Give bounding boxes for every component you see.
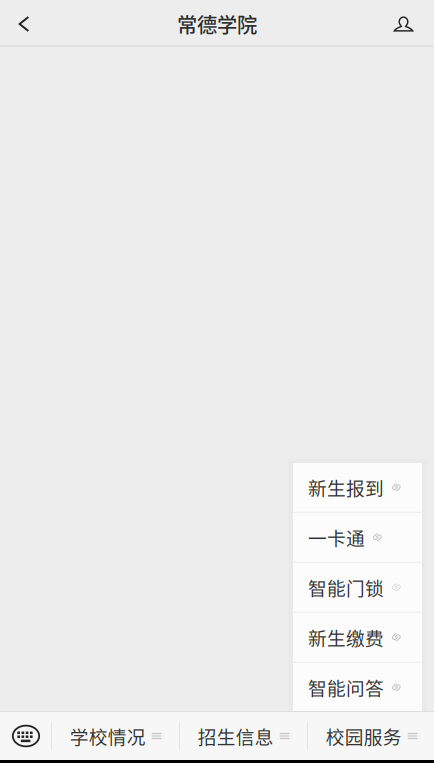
staticText: 智能问答 xyxy=(308,674,384,701)
button[interactable]: 新生缴费 xyxy=(293,613,422,662)
staticText: 智能门锁 xyxy=(308,574,384,601)
button[interactable]: 智能问答 xyxy=(293,663,422,712)
staticText: 新生报到 xyxy=(308,474,384,501)
staticText: 校园服务 xyxy=(326,722,402,749)
button[interactable]: 智能门锁 xyxy=(293,563,422,612)
button[interactable]: Switch to keyboard xyxy=(0,712,51,760)
staticText: 招生信息 xyxy=(198,722,274,749)
staticText: 常德学院 xyxy=(177,9,257,39)
button[interactable]: 学校情况 xyxy=(52,712,179,760)
button[interactable]: 招生信息 xyxy=(180,712,307,760)
button[interactable]: 校园服务 xyxy=(308,712,434,760)
staticText: 学校情况 xyxy=(70,722,146,749)
button[interactable]: Back xyxy=(0,0,48,45)
button[interactable]: 一卡通 xyxy=(293,513,422,562)
staticText: 一卡通 xyxy=(308,524,365,551)
button[interactable]: 新生报到 xyxy=(293,463,422,512)
button[interactable]: Official account profile xyxy=(373,0,434,45)
staticText: 新生缴费 xyxy=(308,624,384,651)
